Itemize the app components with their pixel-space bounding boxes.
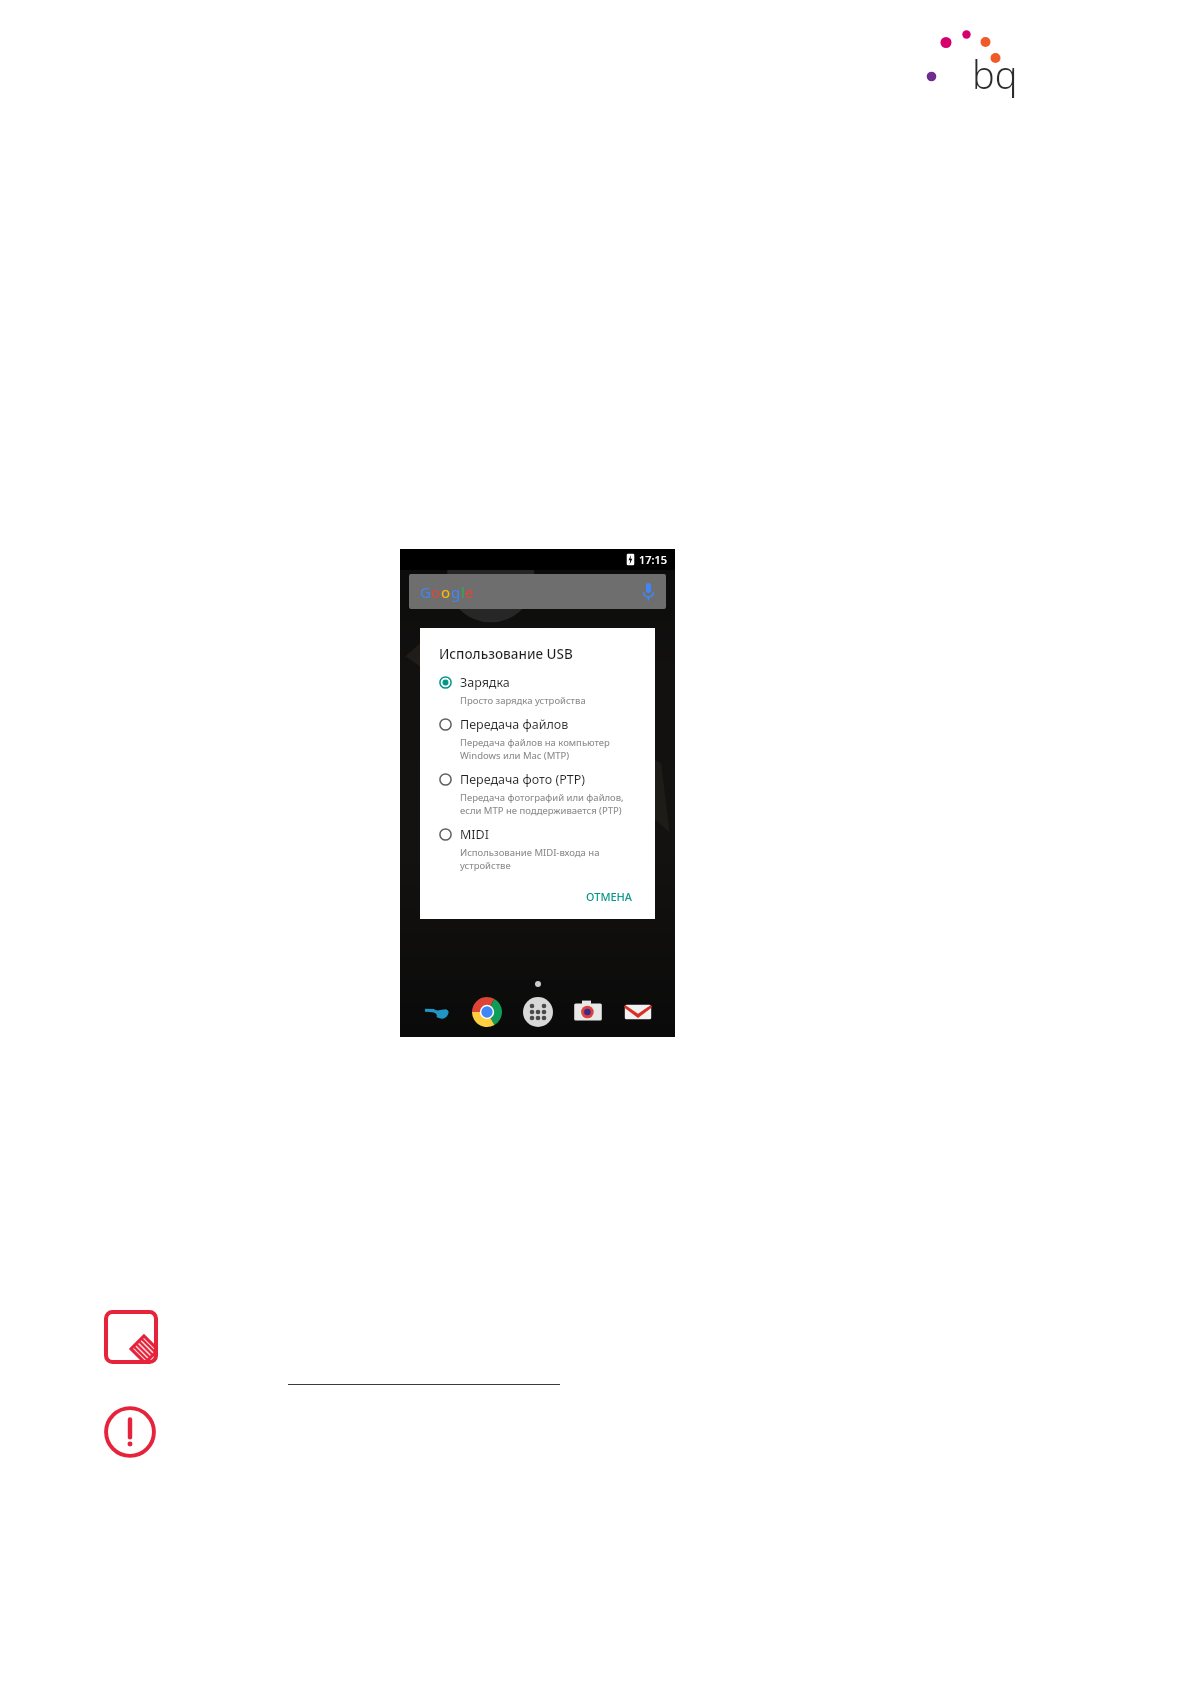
staticText: Просто зарядка устройства xyxy=(460,694,586,707)
staticText: MIDI xyxy=(460,826,489,843)
other: Note xyxy=(104,1310,158,1364)
staticText: Передача фотографий или файлов, xyxy=(460,791,624,804)
staticText: 17:15 xyxy=(639,552,668,567)
button[interactable]: Передача фото (PTP) xyxy=(439,771,641,817)
staticText: g xyxy=(451,582,461,602)
staticText: o xyxy=(441,582,451,602)
button[interactable]: Передача файлов xyxy=(439,716,641,762)
staticText: bq xyxy=(972,48,1018,100)
staticText: ОТМЕНА xyxy=(586,889,633,904)
button[interactable]: All apps xyxy=(523,997,553,1027)
staticText: l xyxy=(461,582,465,602)
other: Voice search xyxy=(642,583,655,601)
staticText: устройстве xyxy=(460,859,511,872)
button[interactable]: ОТМЕНА xyxy=(578,885,641,908)
staticText: Использование USB xyxy=(439,645,573,663)
staticText: Использование MIDI-входа на xyxy=(460,846,600,859)
staticText: Windows или Mac (MTP) xyxy=(460,749,570,762)
other: Warning xyxy=(104,1406,156,1458)
button[interactable]: Chrome xyxy=(472,997,502,1027)
staticText: o xyxy=(431,582,441,602)
staticText: Передача фото (PTP) xyxy=(460,771,585,788)
button[interactable]: MIDI xyxy=(439,826,641,872)
staticText: Передача файлов на компьютер xyxy=(460,736,610,749)
button[interactable]: Зарядка xyxy=(439,674,641,707)
staticText: G xyxy=(420,582,431,602)
button[interactable]: G xyxy=(409,574,666,609)
staticText: если MTP не поддерживается (PTP) xyxy=(460,804,622,817)
button[interactable]: Camera xyxy=(573,997,603,1027)
staticText: Передача файлов xyxy=(460,716,569,733)
button[interactable]: Gmail xyxy=(623,997,653,1027)
staticText: Зарядка xyxy=(460,674,510,691)
button[interactable]: Phone xyxy=(422,997,452,1027)
staticText: e xyxy=(465,582,474,602)
